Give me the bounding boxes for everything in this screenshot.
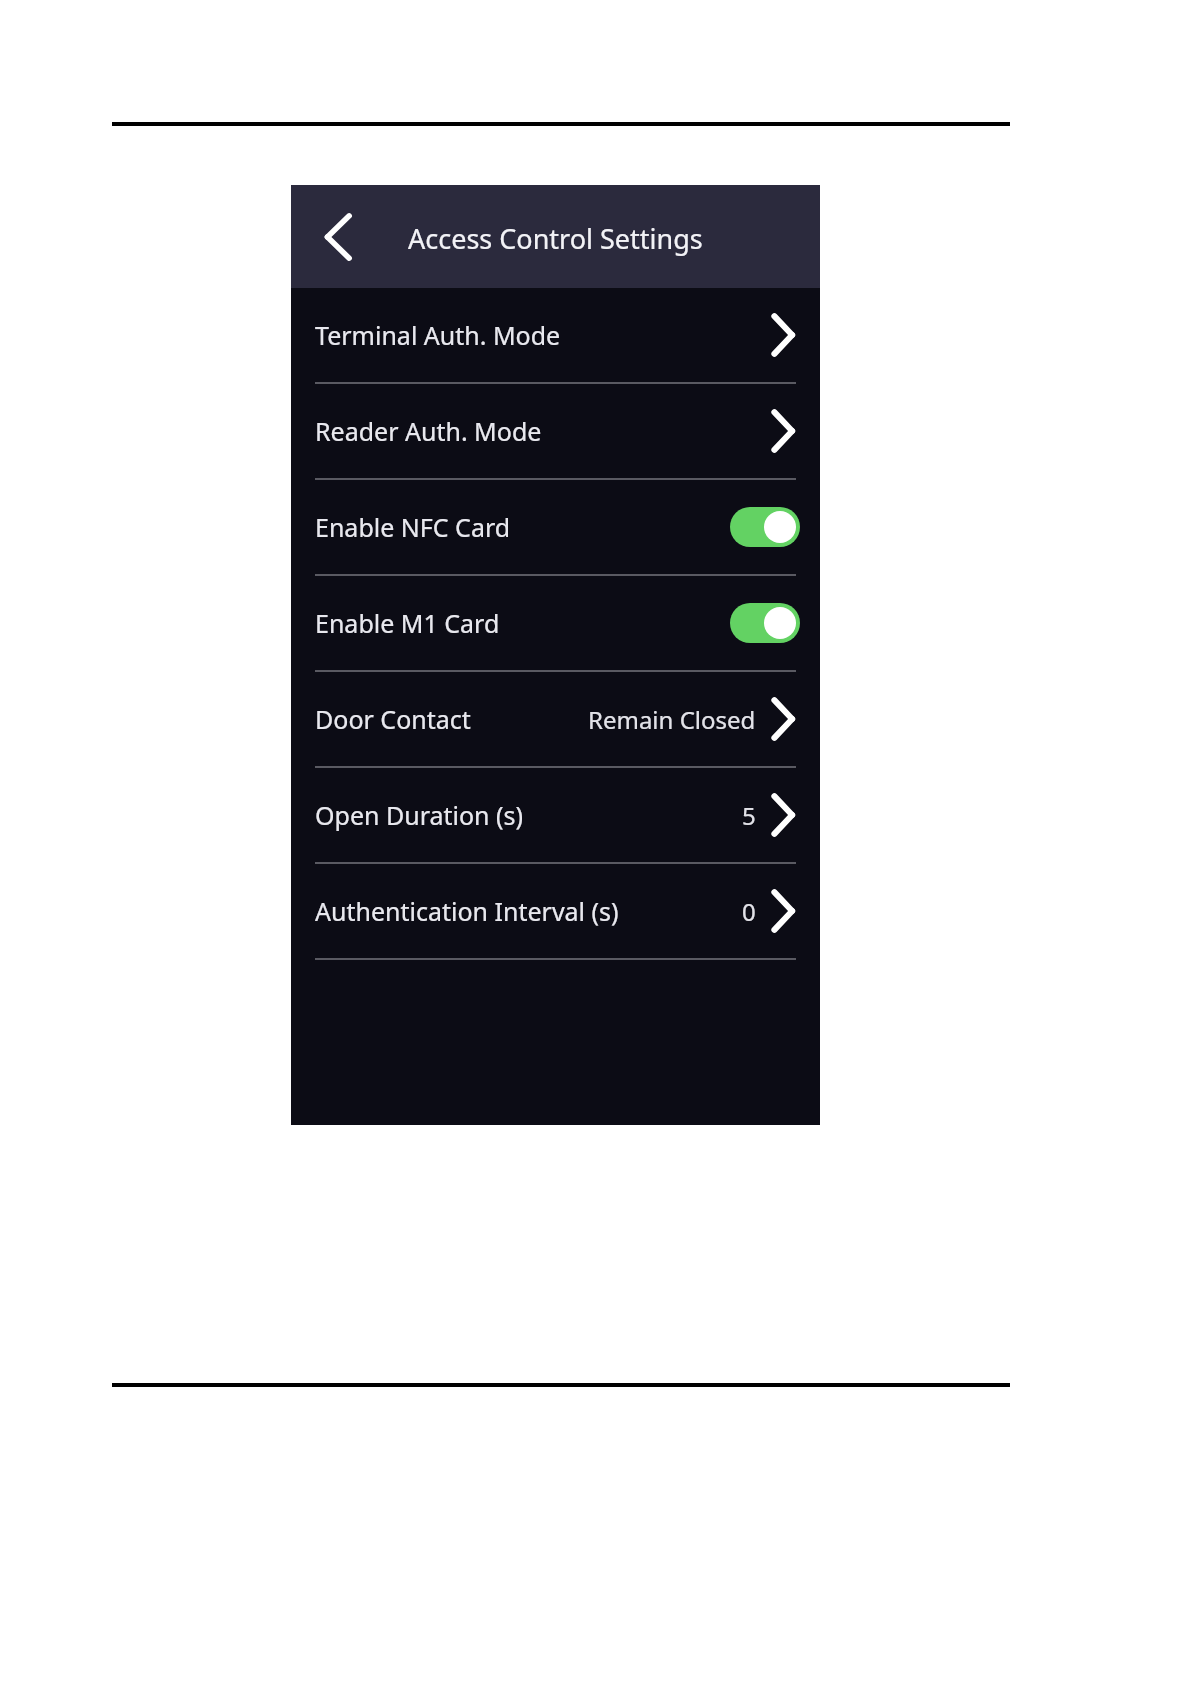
button[interactable]: Door Contact bbox=[291, 672, 820, 766]
button[interactable]: Terminal Auth. Mode bbox=[291, 288, 820, 382]
staticText: Door Contact bbox=[315, 702, 588, 736]
button[interactable]: Authentication Interval (s) bbox=[291, 864, 820, 958]
staticText: Authentication Interval (s) bbox=[315, 894, 742, 928]
button[interactable]: Reader Auth. Mode bbox=[291, 384, 820, 478]
staticText: Remain Closed bbox=[588, 703, 756, 736]
button[interactable]: Toggle on bbox=[730, 507, 800, 547]
button[interactable]: Back bbox=[309, 207, 369, 267]
staticText: Enable NFC Card bbox=[315, 510, 730, 544]
button[interactable]: Toggle on bbox=[730, 603, 800, 643]
button[interactable]: Enable M1 Card bbox=[291, 576, 820, 670]
staticText: 5 bbox=[742, 799, 756, 832]
staticText: Reader Auth. Mode bbox=[315, 414, 766, 448]
staticText: Open Duration (s) bbox=[315, 798, 742, 832]
button[interactable]: Open Duration (s) bbox=[291, 768, 820, 862]
button[interactable]: Enable NFC Card bbox=[291, 480, 820, 574]
staticText: Enable M1 Card bbox=[315, 606, 730, 640]
staticText: 0 bbox=[742, 895, 756, 928]
staticText: Access Control Settings bbox=[408, 220, 703, 257]
staticText: Terminal Auth. Mode bbox=[315, 318, 766, 352]
